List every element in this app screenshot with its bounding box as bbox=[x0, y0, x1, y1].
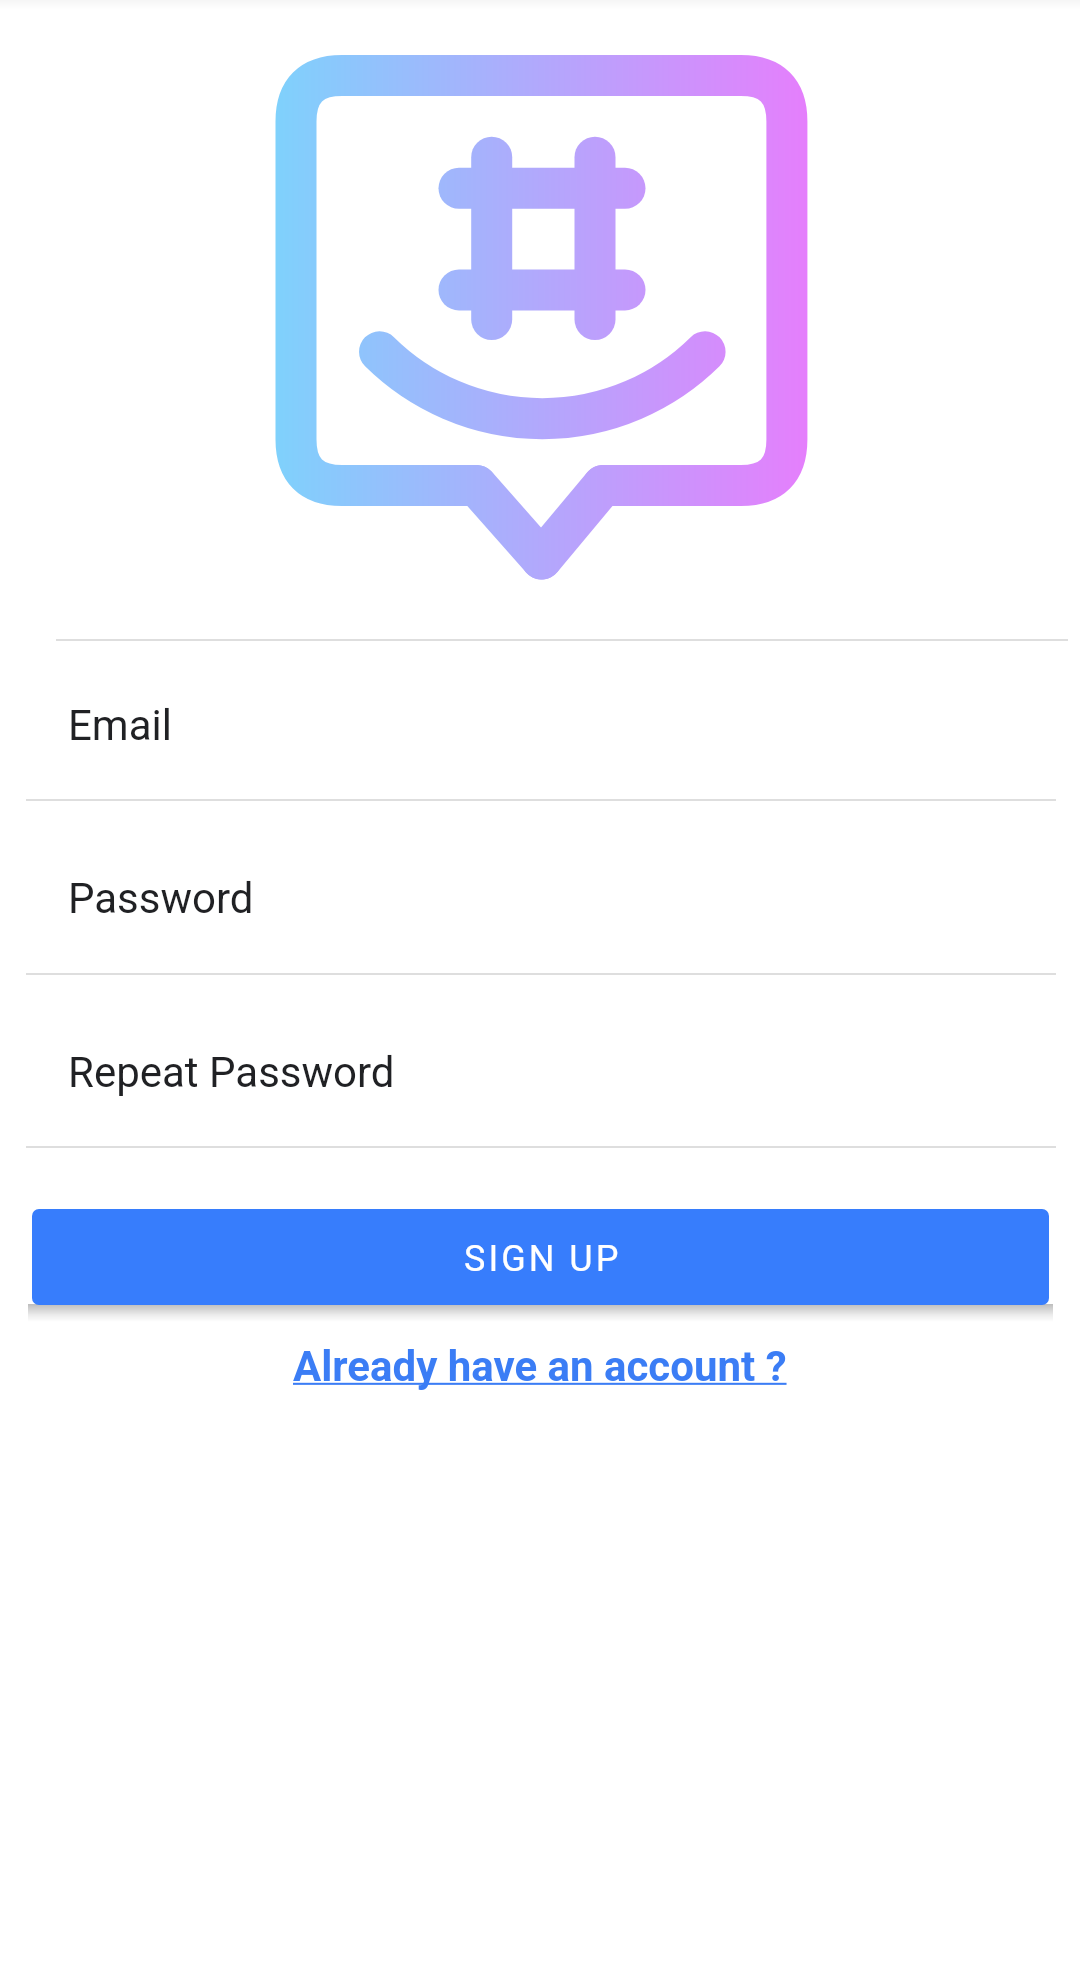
staticText: SIGN UP bbox=[464, 1238, 622, 1280]
button[interactable]: Password bbox=[0, 801, 1080, 915]
button[interactable]: Repeat Password bbox=[0, 975, 1080, 1089]
staticText: Already have an account ? bbox=[293, 1342, 787, 1391]
staticText: Password bbox=[68, 874, 254, 923]
other: App logo bbox=[0, 0, 1080, 1964]
staticText: Repeat Password bbox=[68, 1048, 395, 1097]
button[interactable]: SIGN UP bbox=[32, 1209, 1049, 1305]
staticText: Email bbox=[68, 701, 172, 742]
button[interactable]: Email bbox=[0, 700, 1080, 741]
button[interactable]: Already have an account ? bbox=[0, 1326, 1080, 1406]
